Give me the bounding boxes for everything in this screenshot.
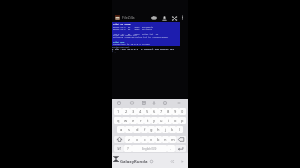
button[interactable]: Subscribe xyxy=(149,159,153,163)
button[interactable]: Space xyxy=(132,145,167,152)
button[interactable]: Voice input xyxy=(151,100,157,106)
button[interactable]: 5 xyxy=(144,108,151,115)
button[interactable]: c xyxy=(141,136,148,143)
button[interactable]: d xyxy=(133,126,141,133)
button[interactable]: u xyxy=(158,117,165,124)
staticText: 0 xyxy=(181,109,184,114)
button[interactable]: Collapse xyxy=(176,100,182,106)
staticText: b xyxy=(157,137,160,142)
button[interactable]: Symbols xyxy=(114,145,124,152)
staticText: d xyxy=(136,127,139,132)
staticText: . xyxy=(170,146,172,151)
button[interactable]: Backspace xyxy=(176,136,186,143)
staticText: 1 xyxy=(117,109,120,114)
button[interactable]: Next xyxy=(180,159,185,164)
button[interactable]: Transfer queue xyxy=(170,14,178,22)
staticText: Connection to 10.0.0.5 closed xyxy=(113,43,180,46)
button[interactable]: b xyxy=(155,136,162,143)
button[interactable]: o xyxy=(172,117,179,124)
staticText: g xyxy=(150,127,153,132)
button[interactable]: 0 xyxy=(179,108,186,115)
staticText: s xyxy=(128,127,130,132)
button[interactable]: f xyxy=(141,126,148,133)
staticText: 8 xyxy=(167,109,170,114)
staticText: ? xyxy=(127,146,129,151)
button[interactable]: Account xyxy=(160,14,168,22)
button[interactable]: r xyxy=(137,117,144,124)
staticText: n xyxy=(164,137,167,142)
staticText: h xyxy=(157,127,160,132)
button[interactable]: App icon xyxy=(115,15,120,20)
button[interactable]: Stickers xyxy=(116,100,122,106)
button[interactable]: l xyxy=(176,126,183,133)
button[interactable]: Cloud transfers xyxy=(150,14,158,22)
button[interactable]: 3 xyxy=(130,108,137,115)
button[interactable]: Shift xyxy=(114,136,125,143)
staticText: u xyxy=(160,118,163,123)
button[interactable]: p xyxy=(179,117,186,124)
button[interactable]: y xyxy=(151,117,158,124)
button[interactable]: n xyxy=(162,136,169,143)
button[interactable]: k xyxy=(169,126,176,133)
button[interactable]: s xyxy=(125,126,133,133)
staticText: x xyxy=(136,137,139,142)
button[interactable]: a xyxy=(117,126,125,133)
staticText: 2 xyxy=(125,109,128,114)
button[interactable]: g xyxy=(148,126,155,133)
staticText: drwxr-xr-x pi 4096 Documents xyxy=(113,26,180,29)
staticText: 7 xyxy=(160,109,163,114)
staticText: a xyxy=(120,127,123,132)
staticText: sftp> cd /home xyxy=(113,23,180,26)
button[interactable]: 4 xyxy=(137,108,144,115)
staticText: e xyxy=(132,118,135,123)
staticText: m xyxy=(171,137,175,142)
button[interactable]: w xyxy=(122,117,130,124)
staticText: -rw-r--r-- pi 2048 notes.txt ok xyxy=(113,33,180,36)
button[interactable]: Enter xyxy=(175,145,186,152)
staticText: !#1 xyxy=(117,147,122,151)
button[interactable]: 2 xyxy=(122,108,130,115)
staticText: o xyxy=(174,118,177,123)
button[interactable]: GIF xyxy=(129,100,135,106)
staticText: p xyxy=(181,118,184,123)
button[interactable]: t xyxy=(144,117,151,124)
button[interactable]: 7 xyxy=(158,108,165,115)
staticText: sftp> bye xyxy=(113,41,180,44)
staticText: 4 xyxy=(139,109,142,114)
button[interactable]: j xyxy=(162,126,169,133)
staticText: l xyxy=(179,127,181,132)
staticText: k xyxy=(171,127,174,132)
staticText: j xyxy=(165,127,167,132)
button[interactable]: Settings xyxy=(162,100,168,106)
staticText: 3 xyxy=(132,109,135,114)
staticText: English (US) xyxy=(142,147,157,151)
staticText: v xyxy=(150,137,153,142)
staticText: c xyxy=(144,137,146,142)
button[interactable]: e xyxy=(130,117,137,124)
button[interactable]: ? xyxy=(124,145,132,152)
button[interactable]: GalaxyRunda xyxy=(120,159,180,165)
button[interactable]: 9 xyxy=(172,108,179,115)
button[interactable]: 6 xyxy=(151,108,158,115)
button[interactable]: 8 xyxy=(165,108,172,115)
button[interactable]: Clipboard xyxy=(141,100,147,106)
button[interactable]: q xyxy=(114,117,122,124)
button[interactable]: z xyxy=(125,136,133,143)
staticText: w xyxy=(124,118,128,123)
staticText: i xyxy=(168,118,170,123)
staticText: t xyxy=(147,118,149,123)
staticText: $ ftp -inv 10.0.0.5 # connect and mirror… xyxy=(112,48,188,51)
button[interactable]: m xyxy=(169,136,176,143)
button[interactable]: Channel avatar xyxy=(113,156,119,162)
button[interactable]: Previous xyxy=(170,159,175,164)
button[interactable]: h xyxy=(155,126,162,133)
staticText: 6 xyxy=(153,109,156,114)
button[interactable]: i xyxy=(165,117,172,124)
staticText: f xyxy=(144,127,146,132)
button[interactable]: More options xyxy=(179,14,185,20)
button[interactable]: x xyxy=(133,136,141,143)
staticText: $ _ xyxy=(112,50,188,53)
button[interactable]: v xyxy=(148,136,155,143)
button[interactable]: 1 xyxy=(114,108,122,115)
button[interactable]: . xyxy=(167,145,175,152)
